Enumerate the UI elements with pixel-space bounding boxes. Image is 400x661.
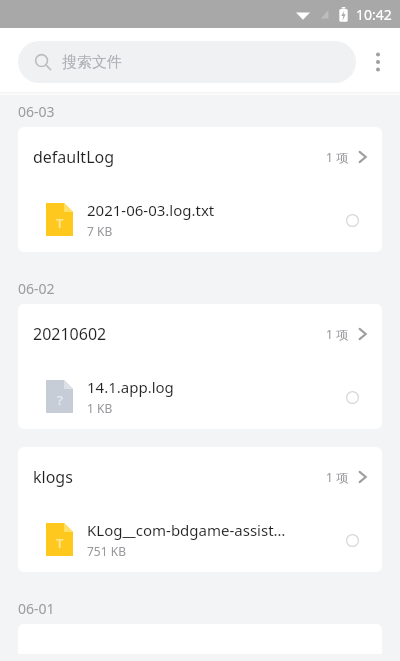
staticText: T [56,534,64,552]
staticText: defaultLog [33,146,326,168]
button[interactable]: Select file [337,205,367,235]
staticText: 06-01 [18,599,55,618]
button[interactable]: T [18,187,382,252]
staticText: 20210602 [33,323,326,345]
staticText: 751 KB [87,543,126,559]
button[interactable]: ? [18,364,382,429]
staticText: 14.1.app.log [87,377,174,397]
staticText: 06-02 [18,279,55,298]
staticText: 1 KB [87,400,113,416]
staticText: 搜索文件 [62,53,122,72]
button[interactable]: Select file [337,382,367,412]
staticText: 1 项 [326,149,348,165]
staticText: klogs [33,466,326,488]
staticText: 1 项 [326,326,348,342]
button[interactable]: klogs [18,447,382,507]
staticText: 1 项 [326,469,348,485]
staticText: ? [57,391,63,409]
button[interactable]: Select file [337,525,367,555]
button[interactable]: 20210602 [18,304,382,364]
button[interactable]: More options [356,38,400,86]
staticText: T [56,214,64,232]
staticText: 06-03 [18,102,55,121]
staticText: 7 KB [87,223,113,239]
staticText: 10:42 [356,5,392,24]
staticText: 2021-06-03.log.txt [87,200,215,220]
button[interactable]: defaultLog [18,127,382,187]
staticText: KLog__com-bdgame-assist… [87,520,286,540]
button[interactable]: T [18,507,382,572]
button[interactable]: 搜索文件 [18,41,356,83]
